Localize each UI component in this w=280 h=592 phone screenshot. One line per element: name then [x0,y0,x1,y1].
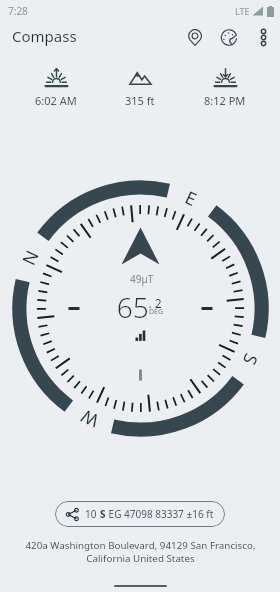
button[interactable]: Theme [212,20,246,54]
staticText: EG 47098 83337 ±16 ft [106,507,214,521]
button[interactable]: 315 ft [111,66,169,110]
button[interactable]: 6:02 AM [27,66,85,110]
staticText: 6:02 AM [35,93,77,108]
staticText: S [100,507,106,521]
staticText: 8:12 PM [204,93,246,108]
button[interactable]: Share location [55,501,225,527]
button[interactable]: 8:12 PM [196,66,254,110]
staticText: 7:28 [8,4,28,18]
staticText: 315 ft [125,93,155,108]
staticText: 10 [85,507,100,521]
staticText: LTE [235,5,250,17]
button[interactable]: Location [178,20,212,54]
staticText: 420a Washington Boulevard, 94129 San Fra… [25,539,256,565]
button[interactable]: More options [246,20,280,54]
staticText: Compass [12,26,77,46]
other: Share location [66,508,79,521]
